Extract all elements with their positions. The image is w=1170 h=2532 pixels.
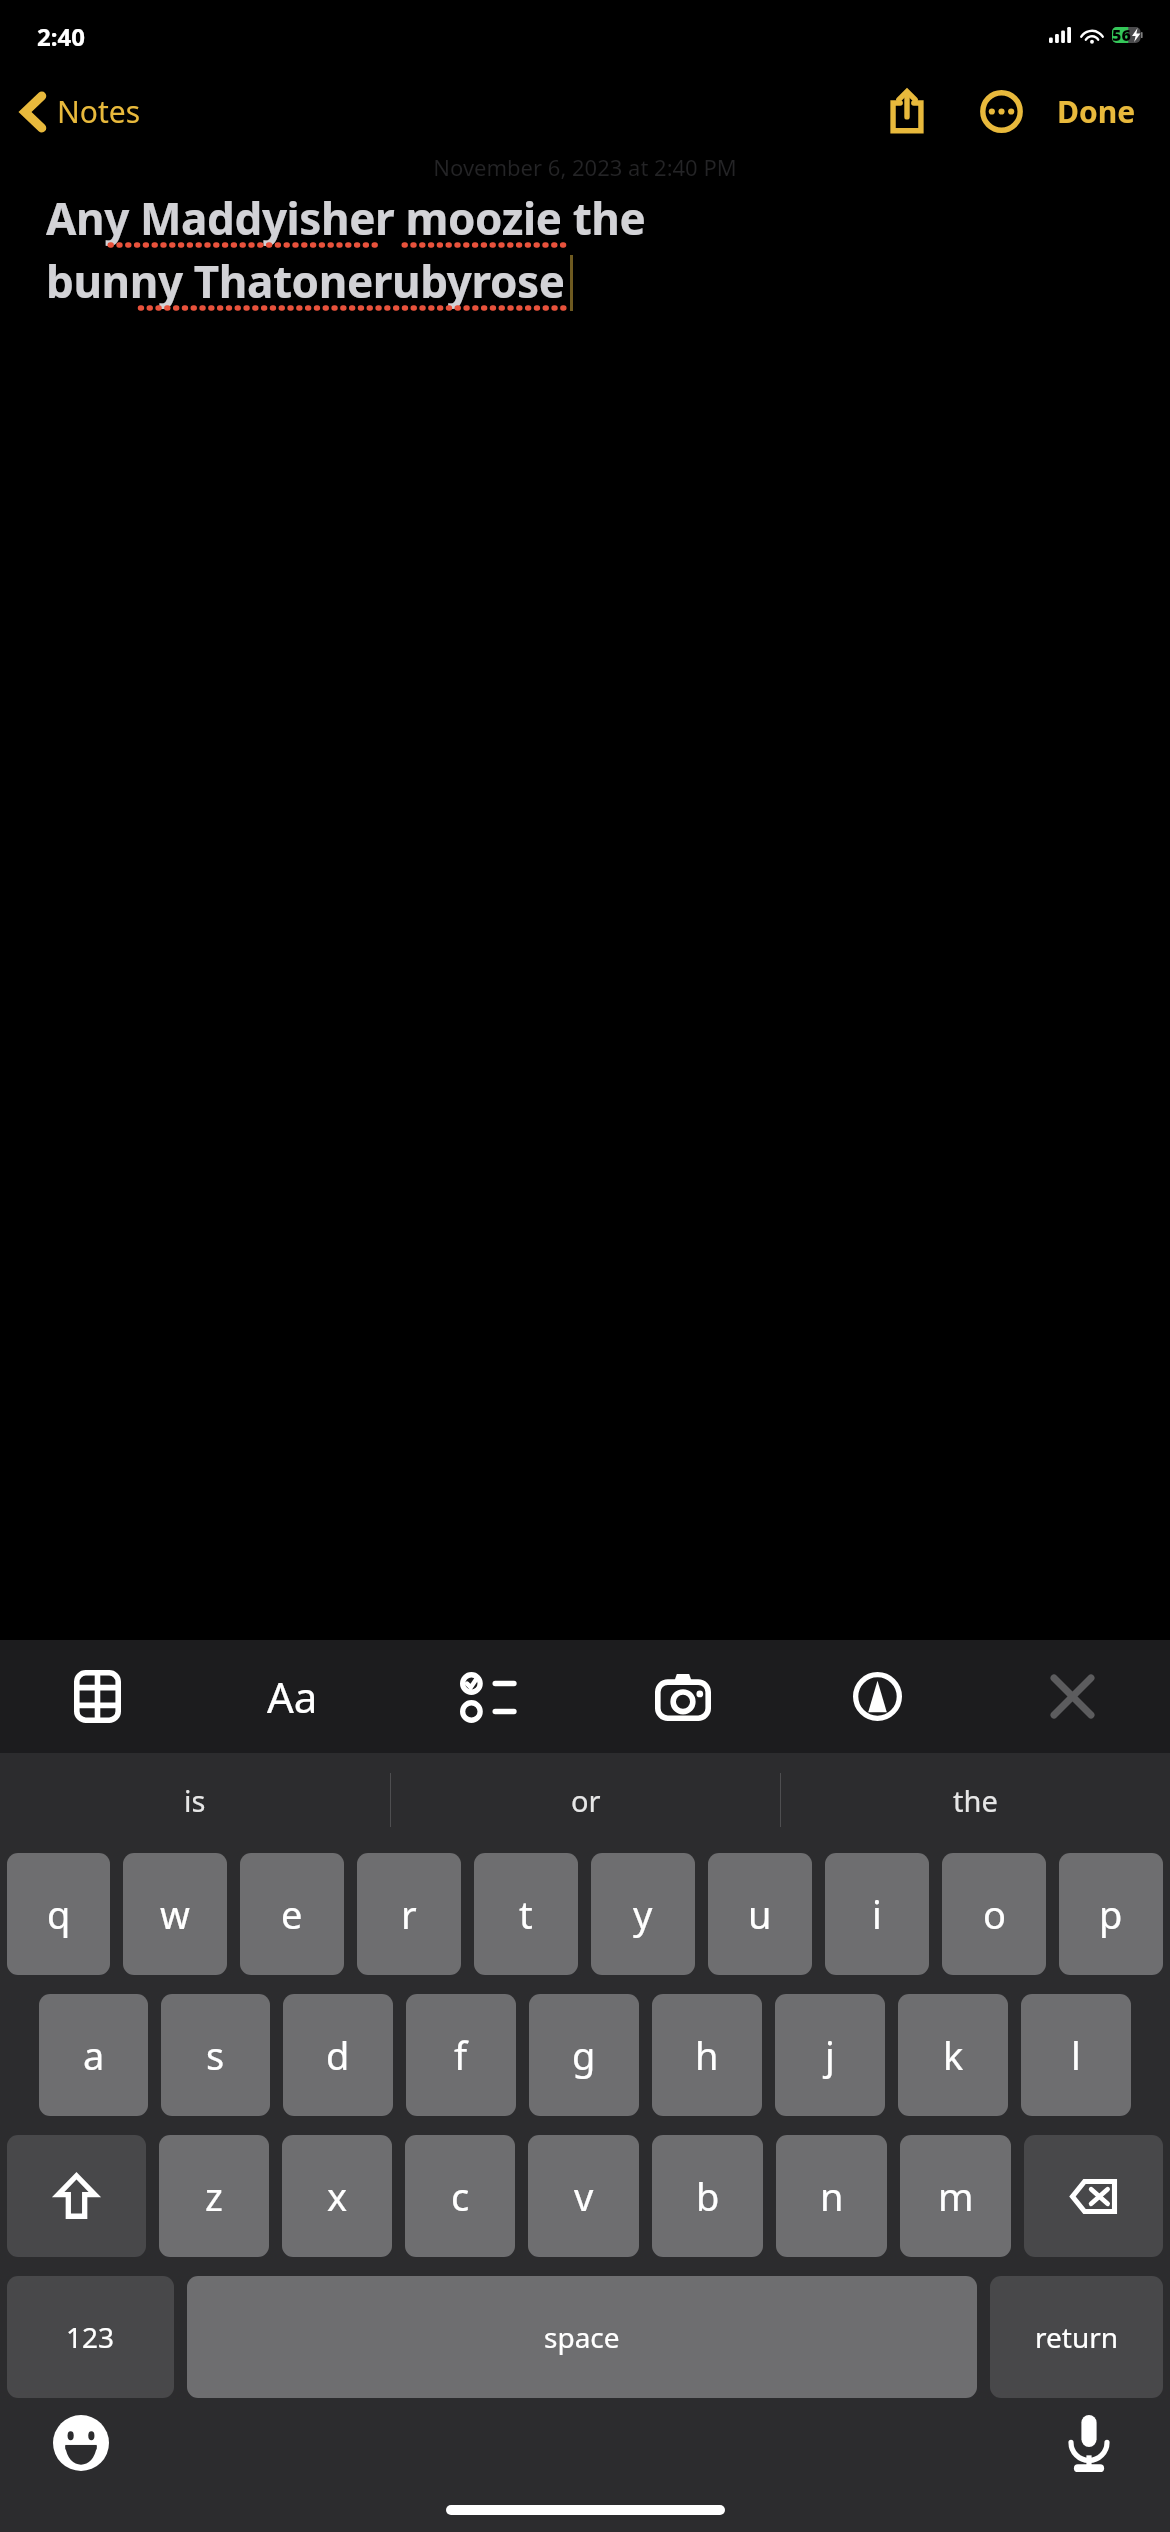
staticText: z [205, 2170, 223, 2222]
button[interactable]: o [942, 1853, 1046, 1975]
button[interactable]: Done [1047, 79, 1146, 144]
staticText: k [943, 2029, 964, 2081]
staticText: x [327, 2170, 348, 2222]
staticText: Done [1057, 91, 1136, 132]
button[interactable]: j [775, 1994, 885, 2116]
button[interactable]: r [357, 1853, 461, 1975]
button[interactable]: q [7, 1853, 110, 1975]
staticText: r [401, 1888, 417, 1940]
button[interactable]: Markup [780, 1640, 975, 1753]
staticText: return [1035, 2318, 1119, 2356]
button[interactable]: d [283, 1994, 393, 2116]
button[interactable]: i [825, 1853, 929, 1975]
staticText: a [83, 2029, 105, 2081]
button[interactable]: Emoji [46, 2408, 116, 2478]
staticText: h [695, 2029, 719, 2081]
button[interactable]: g [529, 1994, 639, 2116]
button[interactable]: l [1021, 1994, 1131, 2116]
staticText: 2:40 [37, 20, 85, 53]
button[interactable]: Delete [1024, 2135, 1163, 2257]
button[interactable]: v [528, 2135, 639, 2257]
button[interactable]: y [591, 1853, 695, 1975]
staticText: Aa [267, 1668, 318, 1725]
button[interactable]: Close keyboard [975, 1640, 1170, 1753]
button[interactable]: n [776, 2135, 887, 2257]
staticText: t [519, 1888, 533, 1940]
button[interactable]: Camera [585, 1640, 780, 1753]
staticText: g [572, 2029, 596, 2081]
button[interactable]: Table [0, 1640, 195, 1753]
button[interactable]: 123 [7, 2276, 174, 2398]
staticText: i [872, 1888, 882, 1940]
button[interactable]: f [406, 1994, 516, 2116]
staticText: bunny Thatonerubyrose [46, 251, 565, 311]
button[interactable]: b [652, 2135, 763, 2257]
staticText: o [983, 1888, 1006, 1940]
button[interactable]: or [391, 1753, 780, 1847]
staticText: Any Maddyisher moozie the [46, 188, 646, 248]
staticText: 56 [1112, 24, 1131, 46]
staticText: q [47, 1888, 71, 1940]
staticText: p [1099, 1888, 1123, 1940]
button[interactable]: Share [869, 73, 945, 149]
staticText: space [544, 2318, 620, 2356]
button[interactable]: Checklist [390, 1640, 585, 1753]
button[interactable]: a [39, 1994, 148, 2116]
button[interactable]: is [0, 1753, 390, 1847]
staticText: Notes [57, 91, 141, 132]
staticText: s [206, 2029, 225, 2081]
button[interactable]: p [1059, 1853, 1163, 1975]
staticText: v [574, 2170, 594, 2222]
button[interactable]: x [282, 2135, 392, 2257]
button[interactable]: Shift [7, 2135, 146, 2257]
button[interactable]: More options [965, 75, 1037, 147]
staticText: c [451, 2170, 470, 2222]
staticText: d [326, 2029, 350, 2081]
staticText: n [820, 2170, 844, 2222]
button[interactable]: space [187, 2276, 977, 2398]
button[interactable]: s [161, 1994, 270, 2116]
button[interactable]: the [781, 1753, 1170, 1847]
button[interactable]: z [159, 2135, 269, 2257]
staticText: j [825, 2029, 835, 2081]
staticText: 123 [66, 2318, 115, 2356]
button[interactable]: Text format [195, 1640, 390, 1753]
staticText: e [281, 1888, 303, 1940]
button[interactable]: c [405, 2135, 515, 2257]
staticText: l [1071, 2029, 1081, 2081]
staticText: w [160, 1888, 190, 1940]
button[interactable]: Dictation [1054, 2408, 1124, 2478]
button[interactable]: w [123, 1853, 227, 1975]
button[interactable]: u [708, 1853, 812, 1975]
button[interactable]: Notes [14, 81, 149, 142]
button[interactable]: m [900, 2135, 1011, 2257]
staticText: b [696, 2170, 720, 2222]
staticText: is [184, 1781, 206, 1820]
button[interactable]: t [474, 1853, 578, 1975]
button[interactable]: e [240, 1853, 344, 1975]
staticText: f [454, 2029, 468, 2081]
staticText: u [748, 1888, 772, 1940]
staticText: m [938, 2170, 974, 2222]
staticText: or [571, 1781, 601, 1820]
button[interactable]: return [990, 2276, 1163, 2398]
staticText: the [953, 1781, 998, 1820]
button[interactable]: k [898, 1994, 1008, 2116]
button[interactable]: h [652, 1994, 762, 2116]
staticText: November 6, 2023 at 2:40 PM [0, 152, 1170, 182]
staticText: y [633, 1888, 653, 1940]
